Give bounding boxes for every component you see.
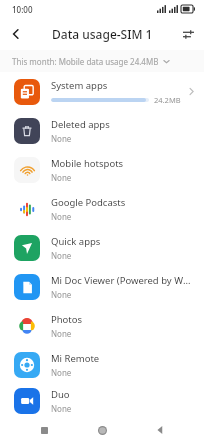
staticText: None: [51, 211, 72, 222]
staticText: None: [51, 250, 72, 261]
button[interactable]: Home: [88, 418, 116, 442]
button[interactable]: Filter: [172, 18, 204, 50]
staticText: This month: Mobile data usage 24.4MB: [12, 56, 159, 67]
button[interactable]: Photos: [0, 306, 204, 345]
staticText: Mobile hotspots: [51, 157, 124, 170]
staticText: None: [51, 328, 72, 339]
staticText: Deleted apps: [51, 118, 110, 131]
button[interactable]: Duo: [0, 384, 204, 418]
button[interactable]: Recents: [30, 418, 58, 442]
button[interactable]: Back: [0, 18, 32, 50]
staticText: Data usage-SIM 1: [52, 26, 153, 42]
staticText: System apps: [51, 79, 108, 92]
staticText: 10:00: [12, 4, 33, 15]
staticText: None: [51, 289, 72, 300]
button[interactable]: This month: Mobile data usage 24.4MB: [0, 50, 204, 72]
button[interactable]: Back: [146, 418, 174, 442]
staticText: Google Podcasts: [51, 196, 126, 209]
button[interactable]: Mobile hotspots: [0, 150, 204, 189]
staticText: None: [51, 133, 72, 144]
staticText: Quick apps: [51, 235, 101, 248]
staticText: Mi Doc Viewer (Powered by WPS): [51, 274, 194, 287]
button[interactable]: Mi Remote: [0, 345, 204, 384]
staticText: Duo: [51, 388, 70, 401]
button[interactable]: Google Podcasts: [0, 189, 204, 228]
button[interactable]: System apps: [0, 72, 204, 111]
staticText: Mi Remote: [51, 352, 100, 365]
button[interactable]: Mi Doc Viewer (Powered by WPS): [0, 267, 204, 306]
button[interactable]: Deleted apps: [0, 111, 204, 150]
staticText: None: [51, 403, 72, 414]
staticText: None: [51, 367, 72, 378]
staticText: 24.2MB: [154, 95, 181, 105]
button[interactable]: Quick apps: [0, 228, 204, 267]
staticText: Photos: [51, 313, 83, 326]
staticText: None: [51, 172, 72, 183]
